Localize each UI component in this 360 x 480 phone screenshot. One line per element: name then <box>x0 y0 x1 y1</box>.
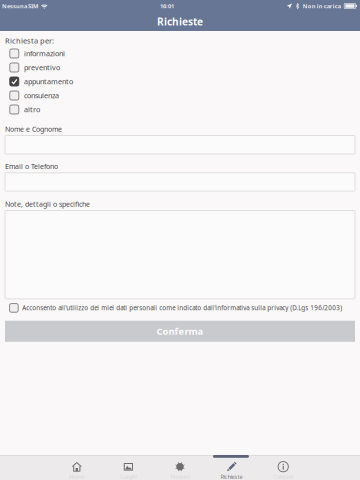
button[interactable]: appuntamento <box>0 74 360 88</box>
staticText: Richieste <box>157 15 203 28</box>
button[interactable]: consulenza <box>0 88 360 102</box>
staticText: Luoghi <box>120 473 136 480</box>
staticText: altro <box>24 105 40 114</box>
staticText: informazioni <box>24 49 65 58</box>
button[interactable]: Conferma <box>0 321 360 342</box>
staticText: preventivo <box>24 63 60 72</box>
staticText: Prodotti <box>170 473 189 480</box>
button[interactable]: informazioni <box>0 46 360 60</box>
staticText: Non in carica <box>303 2 341 10</box>
button[interactable]: altro <box>0 102 360 116</box>
staticText: Home <box>69 473 84 480</box>
button[interactable]: preventivo <box>0 60 360 74</box>
button[interactable]: Luoghi <box>103 456 154 480</box>
staticText: Richieste <box>221 473 243 480</box>
staticText: Nessuna SIM <box>2 2 38 10</box>
staticText: Acconsento all'utilizzo dei miei dati pe… <box>22 304 342 312</box>
staticText: Nome e Cognome <box>5 124 62 134</box>
staticText: consulenza <box>24 91 59 100</box>
button[interactable]: Home <box>51 456 103 480</box>
staticText: Note, dettagli o specifiche <box>5 199 90 209</box>
staticText: Richiesta per: <box>5 35 54 46</box>
staticText: Email o Telefono <box>5 162 58 171</box>
button[interactable]: Acconsento all'utilizzo dei miei dati pe… <box>0 301 360 315</box>
staticText: Contatti <box>273 473 293 480</box>
staticText: Conferma <box>156 325 203 338</box>
button[interactable]: Richieste <box>206 456 257 480</box>
button[interactable] <box>0 135 360 154</box>
staticText: 16:01 <box>160 2 174 10</box>
button[interactable]: Prodotti <box>154 456 206 480</box>
button[interactable]: Contatti <box>257 456 309 480</box>
button[interactable] <box>0 173 360 191</box>
staticText: appuntamento <box>24 77 73 86</box>
